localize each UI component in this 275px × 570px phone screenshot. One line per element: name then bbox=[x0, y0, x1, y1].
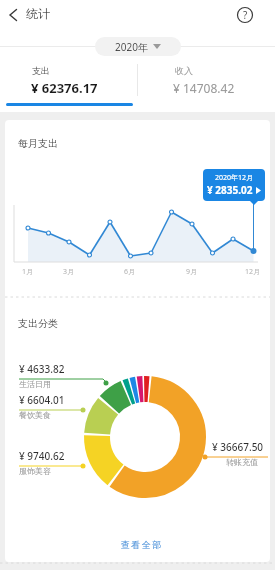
staticText: 3月 bbox=[63, 267, 75, 277]
staticText: ¥ 6604.01 bbox=[19, 393, 65, 407]
staticText: ¥ 14708.42 bbox=[173, 80, 235, 96]
staticText: 收入 bbox=[175, 65, 193, 76]
staticText: 9月 bbox=[186, 267, 198, 277]
staticText: 6月 bbox=[124, 267, 136, 277]
button[interactable]: 查看全部 bbox=[106, 534, 176, 554]
staticText: 统计 bbox=[26, 6, 50, 21]
staticText: 查看全部 bbox=[120, 539, 162, 550]
staticText: 2020年 bbox=[115, 40, 148, 54]
button[interactable]: 2020年 bbox=[95, 37, 181, 56]
button[interactable] bbox=[137, 58, 275, 102]
button[interactable]: ? bbox=[236, 6, 254, 24]
button[interactable] bbox=[0, 58, 137, 102]
button[interactable]: 2020年12月 bbox=[203, 169, 265, 201]
staticText: 支出 bbox=[32, 65, 50, 76]
staticText: 餐饮美食 bbox=[19, 410, 51, 420]
staticText: 支出分类 bbox=[18, 317, 58, 330]
staticText: ¥ 2835.02 bbox=[207, 183, 253, 197]
staticText: ¥ 4633.82 bbox=[19, 362, 65, 376]
staticText: 服饰美容 bbox=[19, 466, 51, 476]
staticText: 每月支出 bbox=[18, 137, 58, 150]
staticText: ? bbox=[243, 8, 248, 22]
button[interactable] bbox=[4, 4, 26, 26]
staticText: 生活日用 bbox=[19, 379, 51, 389]
staticText: ¥ 36667.50 bbox=[212, 440, 264, 454]
staticText: 转账充值 bbox=[226, 457, 258, 467]
staticText: ¥ 62376.17 bbox=[31, 79, 98, 97]
staticText: ¥ 9740.62 bbox=[19, 449, 65, 463]
staticText: 1月 bbox=[22, 267, 34, 277]
staticText: 12月 bbox=[245, 267, 261, 277]
staticText: 2020年12月 bbox=[215, 173, 254, 183]
